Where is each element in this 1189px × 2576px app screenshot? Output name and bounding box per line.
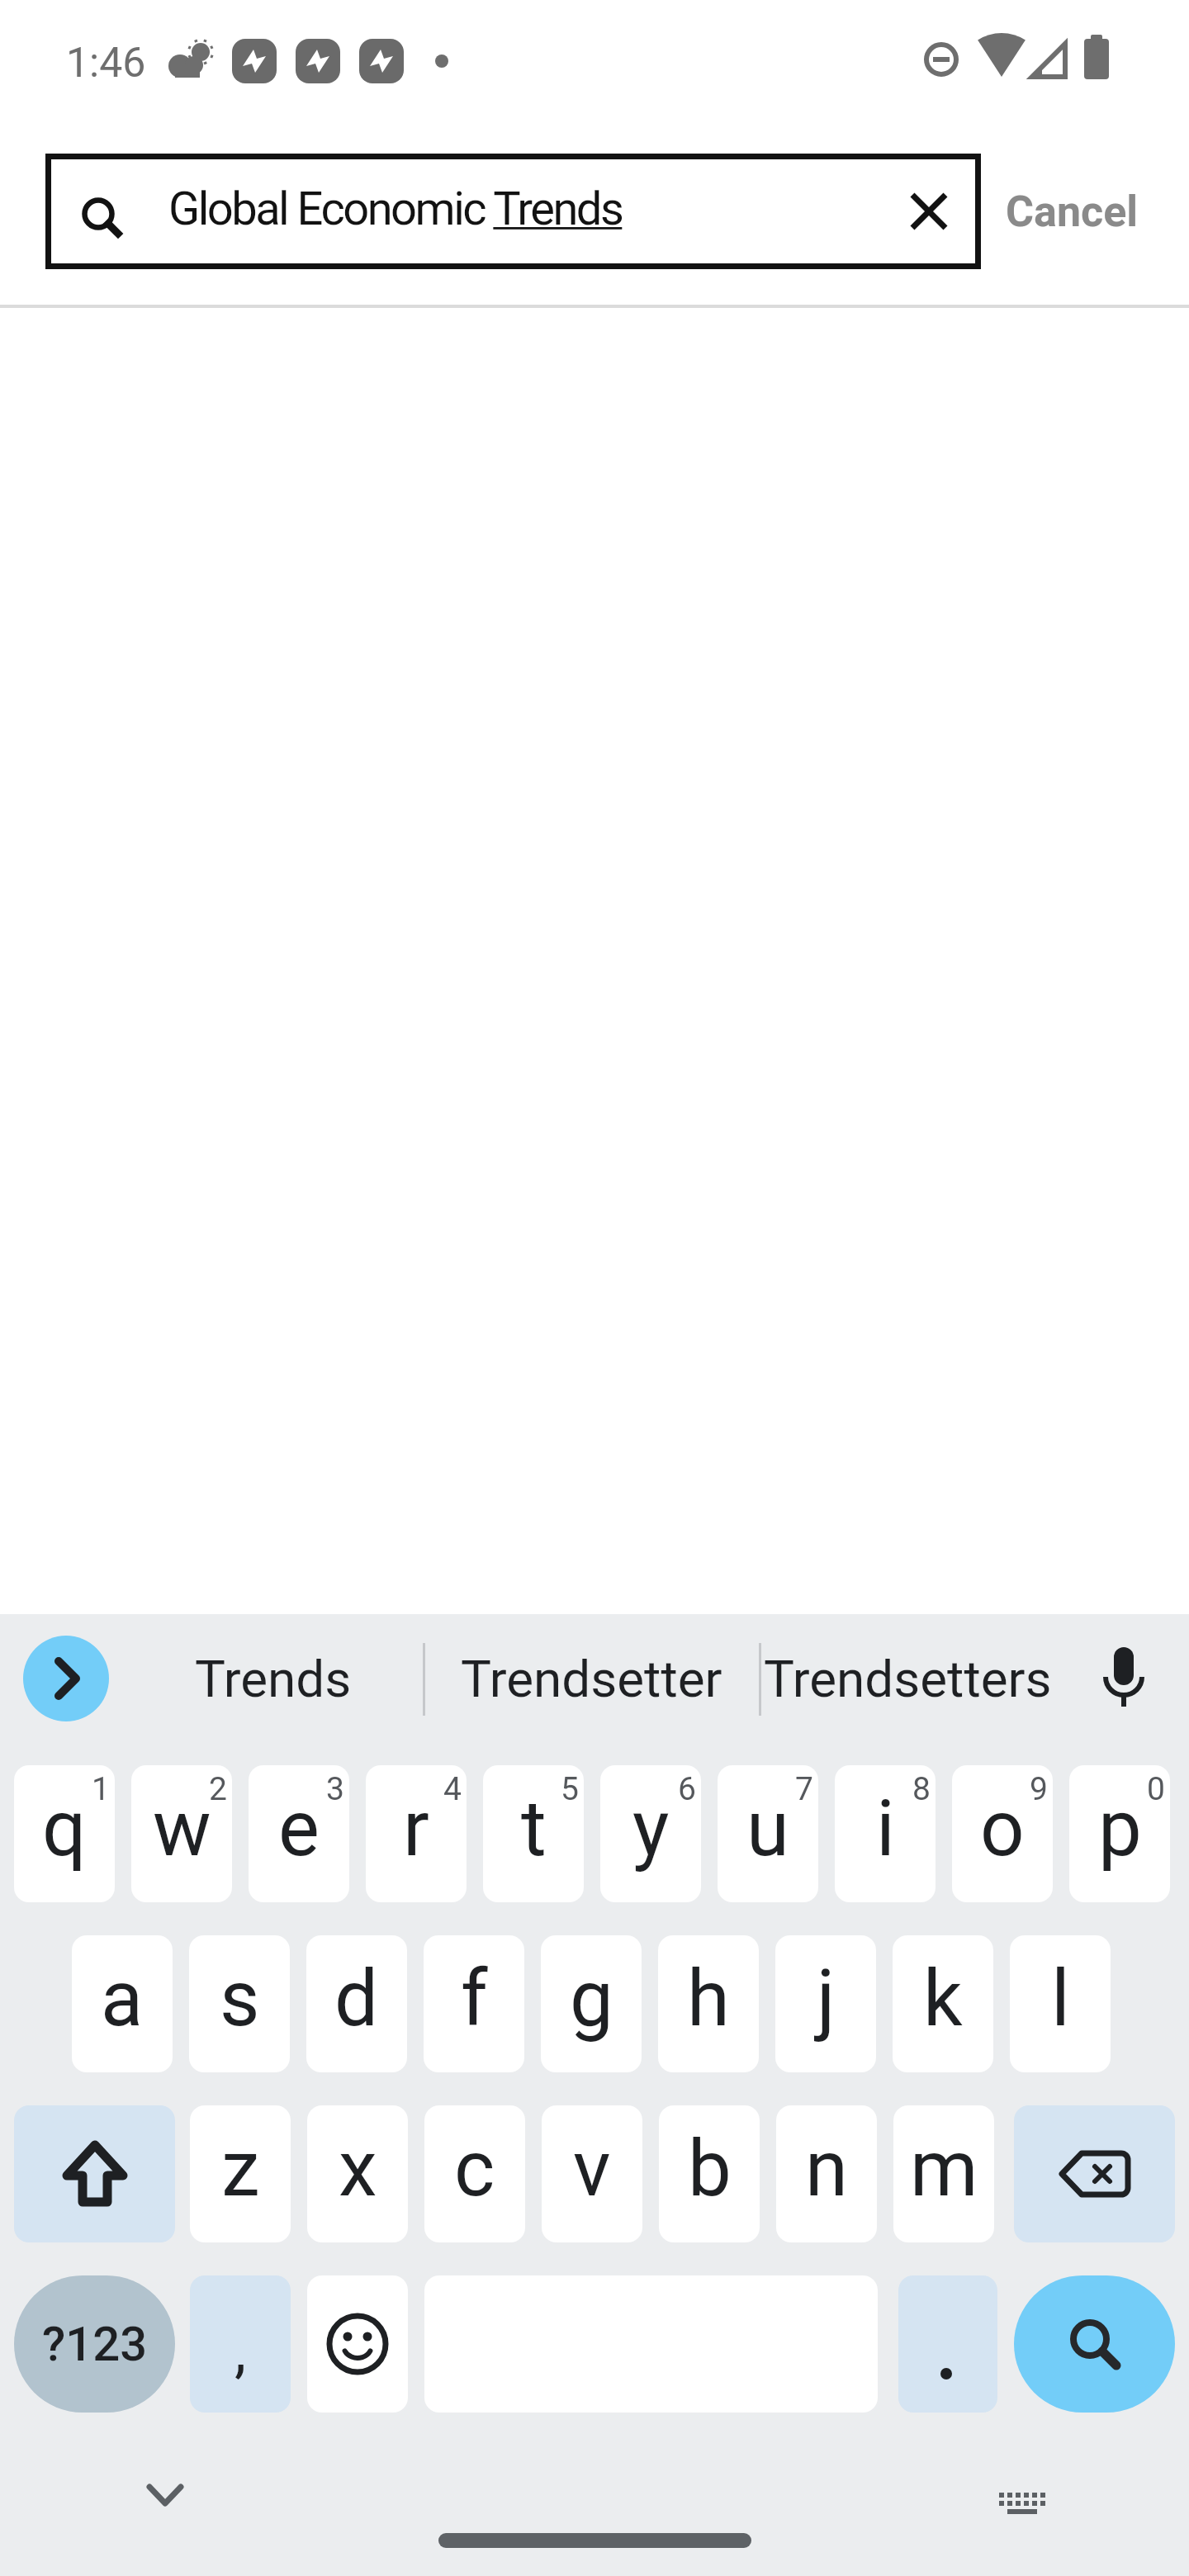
staticText: Trends [195,1649,352,1709]
button[interactable] [996,2489,1054,2526]
button[interactable]: Trends [133,1636,414,1721]
staticText: Trendsetter [461,1649,722,1709]
button[interactable]: Trendsetter [443,1636,740,1721]
button[interactable] [14,2105,175,2242]
button[interactable]: t [483,1765,584,1902]
staticText: g [570,1953,613,2044]
staticText: n [805,2124,848,2214]
staticText: 1:46 [66,39,146,88]
button[interactable]: , [190,2275,291,2413]
button[interactable]: j [775,1935,876,2072]
staticText: 7 [795,1770,813,1808]
button[interactable]: q [14,1765,115,1902]
staticText: e [278,1783,320,1874]
staticText: Global Economic Trends [168,182,623,236]
button[interactable]: c [424,2105,525,2242]
staticText: d [334,1953,379,2044]
button[interactable]: u [718,1765,818,1902]
button[interactable]: n [776,2105,877,2242]
staticText: y [632,1783,670,1874]
button[interactable]: k [893,1935,993,2072]
button[interactable]: y [600,1765,701,1902]
staticText: a [101,1953,144,2044]
staticText: r [403,1783,429,1874]
staticText: h [687,1953,730,2044]
staticText: z [221,2124,260,2214]
button[interactable]: a [72,1935,173,2072]
staticText: 3 [326,1770,344,1808]
staticText: l [1051,1953,1070,2044]
button[interactable]: Cancel [996,175,1148,248]
staticText: v [573,2124,611,2214]
staticText: s [220,1953,260,2044]
staticText: 4 [443,1770,462,1808]
staticText: 0 [1147,1770,1165,1808]
staticText: f [461,1953,488,2044]
staticText: i [876,1783,895,1874]
button[interactable]: l [1010,1935,1111,2072]
button[interactable]: i [835,1765,936,1902]
staticText: 9 [1030,1770,1048,1808]
button[interactable]: b [659,2105,760,2242]
staticText: , [234,2316,247,2385]
button[interactable] [1014,2105,1175,2242]
staticText: m [910,2124,978,2214]
staticText: b [688,2124,732,2214]
button[interactable] [132,2477,198,2526]
button[interactable] [898,2275,997,2413]
button[interactable]: o [952,1765,1053,1902]
button[interactable]: h [658,1935,759,2072]
staticText: Trendsetters [764,1649,1052,1709]
button[interactable] [438,2533,751,2548]
button[interactable]: s [189,1935,290,2072]
staticText: ?123 [42,2316,148,2372]
staticText: w [153,1783,211,1874]
button[interactable] [1014,2275,1175,2413]
staticText: 1 [92,1770,110,1808]
button[interactable]: d [306,1935,407,2072]
button[interactable]: r [366,1765,467,1902]
staticText: q [42,1783,87,1874]
button[interactable]: Trendsetters [751,1636,1064,1721]
staticText: 2 [209,1770,227,1808]
button[interactable]: g [541,1935,642,2072]
staticText: o [980,1783,1025,1874]
button[interactable]: m [893,2105,994,2242]
staticText: 5 [561,1770,579,1808]
button[interactable] [902,185,955,238]
button[interactable]: z [190,2105,291,2242]
staticText: j [817,1953,836,2044]
button[interactable]: p [1069,1765,1170,1902]
staticText: p [1098,1783,1142,1874]
staticText: 8 [912,1770,931,1808]
staticText: k [923,1953,963,2044]
button[interactable]: e [249,1765,349,1902]
staticText: Cancel [1006,187,1139,237]
button[interactable] [1098,1647,1149,1713]
staticText: t [521,1783,547,1874]
button[interactable]: w [131,1765,232,1902]
button[interactable]: f [424,1935,524,2072]
button[interactable]: x [307,2105,408,2242]
staticText: u [746,1783,789,1874]
staticText: c [454,2124,495,2214]
button[interactable]: ?123 [14,2275,175,2413]
staticText: x [339,2124,377,2214]
button[interactable] [23,1636,109,1721]
button[interactable]: Global Economic Trends [45,154,981,269]
button[interactable] [307,2275,408,2413]
staticText: 6 [678,1770,696,1808]
button[interactable]: v [542,2105,642,2242]
